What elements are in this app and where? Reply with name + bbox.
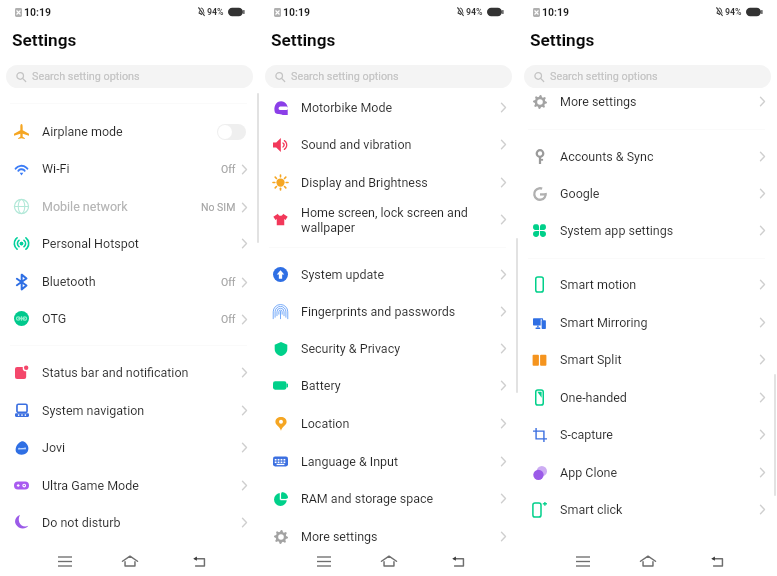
button[interactable]: Motorbike Mode xyxy=(259,89,518,126)
staticText: Smart Split xyxy=(560,352,622,367)
button[interactable]: Back xyxy=(186,548,212,574)
staticText: Smart Mirroring xyxy=(560,315,648,330)
button[interactable]: Accounts & Sync xyxy=(518,138,777,175)
button[interactable]: Airplane mode xyxy=(0,113,259,150)
staticText: More settings xyxy=(301,529,378,544)
staticText: No SIM xyxy=(201,201,236,213)
staticText: System update xyxy=(301,267,385,282)
staticText: Search setting options xyxy=(32,70,140,83)
staticText: One-handed xyxy=(560,390,627,405)
staticText: Ultra Game Mode xyxy=(42,478,139,493)
staticText: RAM and storage space xyxy=(301,491,434,506)
button[interactable]: Location xyxy=(259,405,518,442)
button[interactable]: Security & Privacy xyxy=(259,330,518,367)
staticText: System app settings xyxy=(560,223,674,238)
staticText: Jovi xyxy=(42,440,66,455)
button[interactable]: S-capture xyxy=(518,416,777,453)
staticText: System navigation xyxy=(42,403,145,418)
staticText: Settings xyxy=(12,30,77,50)
staticText: Do not disturb xyxy=(42,515,121,530)
button[interactable]: Language & Input xyxy=(259,443,518,480)
staticText: Accounts & Sync xyxy=(560,149,654,164)
button[interactable]: One-handed xyxy=(518,379,777,416)
staticText: Security & Privacy xyxy=(301,341,401,356)
staticText: Display and Brightness xyxy=(301,175,428,190)
staticText: Status bar and notification xyxy=(42,365,189,380)
button[interactable]: Back xyxy=(445,548,471,574)
button[interactable]: Smart click xyxy=(518,491,777,528)
staticText: 10:19 xyxy=(283,6,311,18)
button[interactable]: More settings xyxy=(518,83,777,120)
button[interactable]: Wi-Fi xyxy=(0,150,259,187)
button[interactable]: Jovi xyxy=(0,429,259,466)
staticText: Off xyxy=(221,163,236,175)
staticText: Off xyxy=(221,313,236,325)
button[interactable]: Home screen, lock screen and xyxy=(259,201,518,238)
staticText: More settings xyxy=(560,94,637,109)
button[interactable]: Smart Mirroring xyxy=(518,304,777,341)
button[interactable]: Search setting options xyxy=(6,65,253,88)
button[interactable]: Recent apps xyxy=(311,548,337,574)
button[interactable]: System update xyxy=(259,256,518,293)
button[interactable]: App Clone xyxy=(518,454,777,491)
staticText: 10:19 xyxy=(542,6,570,18)
button[interactable]: Home xyxy=(376,548,402,574)
button[interactable]: Battery xyxy=(259,367,518,404)
staticText: S-capture xyxy=(560,427,613,442)
button[interactable]: System app settings xyxy=(518,212,777,249)
staticText: Motorbike Mode xyxy=(301,100,393,115)
staticText: Smart click xyxy=(560,502,623,517)
button[interactable]: System navigation xyxy=(0,392,259,429)
button[interactable]: Bluetooth xyxy=(0,263,259,300)
staticText: Mobile network xyxy=(42,199,128,214)
staticText: Location xyxy=(301,416,350,431)
staticText: Search setting options xyxy=(291,70,399,83)
staticText: Language & Input xyxy=(301,454,399,469)
button[interactable]: Mobile network xyxy=(0,188,259,225)
staticText: Settings xyxy=(530,30,595,50)
button[interactable]: Smart Split xyxy=(518,341,777,378)
staticText: Sound and vibration xyxy=(301,137,412,152)
button[interactable]: Recent apps xyxy=(52,548,78,574)
button[interactable]: Ultra Game Mode xyxy=(0,467,259,504)
staticText: Home screen, lock screen and xyxy=(301,205,468,220)
staticText: Fingerprints and passwords xyxy=(301,304,456,319)
staticText: Battery xyxy=(301,378,341,393)
staticText: Wi-Fi xyxy=(42,161,70,176)
staticText: Settings xyxy=(271,30,336,50)
staticText: 94% xyxy=(725,7,742,17)
button[interactable]: Sound and vibration xyxy=(259,126,518,163)
staticText: Personal Hotspot xyxy=(42,236,139,251)
staticText: 94% xyxy=(207,7,224,17)
staticText: OTG xyxy=(42,311,67,326)
staticText: Off xyxy=(221,276,236,288)
button[interactable]: Recent apps xyxy=(570,548,596,574)
staticText: Smart motion xyxy=(560,277,637,292)
button[interactable]: Search setting options xyxy=(265,65,512,88)
button[interactable]: RAM and storage space xyxy=(259,480,518,517)
button[interactable]: OTG xyxy=(0,300,259,337)
staticText: Bluetooth xyxy=(42,274,96,289)
button[interactable]: Status bar and notification xyxy=(0,354,259,391)
button[interactable]: Personal Hotspot xyxy=(0,225,259,262)
staticText: Airplane mode xyxy=(42,124,123,139)
button[interactable]: Display and Brightness xyxy=(259,164,518,201)
staticText: Search setting options xyxy=(550,70,658,83)
button[interactable]: Fingerprints and passwords xyxy=(259,293,518,330)
button[interactable]: Back xyxy=(704,548,730,574)
button[interactable]: Home xyxy=(117,548,143,574)
button[interactable]: Search setting options xyxy=(524,65,771,88)
button[interactable]: More settings xyxy=(259,518,518,555)
button[interactable]: Smart motion xyxy=(518,266,777,303)
staticText: 94% xyxy=(466,7,483,17)
button[interactable]: Do not disturb xyxy=(0,504,259,541)
staticText: App Clone xyxy=(560,465,618,480)
button[interactable]: Home xyxy=(635,548,661,574)
staticText: Google xyxy=(560,186,600,201)
staticText: 10:19 xyxy=(24,6,52,18)
button[interactable]: Google xyxy=(518,175,777,212)
staticText: wallpaper xyxy=(301,220,355,235)
